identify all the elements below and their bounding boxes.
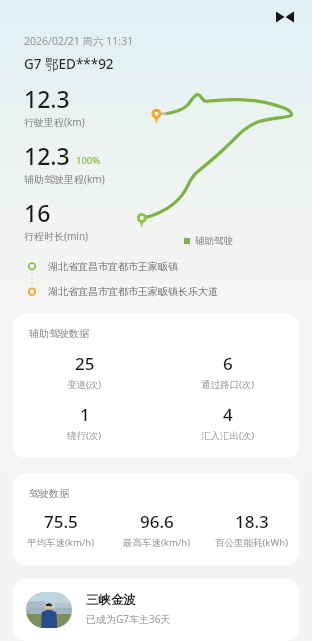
- staticText: 已成为G7车主36天: [86, 612, 171, 626]
- staticText: 平均车速(km/h): [27, 536, 95, 549]
- staticText: 4: [223, 403, 233, 426]
- staticText: 行驶里程(km): [24, 115, 85, 129]
- staticText: 辅助驾驶里程(km): [24, 172, 105, 186]
- button[interactable]: 三峡金波: [13, 579, 299, 641]
- staticText: 变道(次): [67, 378, 102, 391]
- staticText: 绕行(次): [67, 429, 102, 442]
- staticText: 100%: [76, 154, 101, 167]
- staticText: 辅助驾驶: [195, 235, 233, 247]
- staticText: 湖北省宜昌市宜都市王家畈镇长乐大道: [48, 285, 218, 298]
- button[interactable]: Share: [272, 4, 298, 30]
- staticText: G7 鄂ED***92: [24, 55, 114, 73]
- staticText: 辅助驾驶数据: [29, 327, 89, 340]
- staticText: 96.6: [140, 510, 174, 533]
- staticText: 18.3: [235, 510, 269, 533]
- staticText: 2026/02/21 周六 11:31: [24, 34, 134, 48]
- button[interactable]: 驾驶数据: [13, 473, 299, 565]
- staticText: 12.3: [24, 83, 70, 114]
- staticText: 12.3: [24, 140, 70, 171]
- staticText: 湖北省宜昌市宜都市王家畈镇: [48, 260, 178, 273]
- button[interactable]: 辅助驾驶数据: [13, 313, 299, 458]
- staticText: 75.5: [44, 510, 78, 533]
- staticText: 1: [80, 403, 90, 426]
- staticText: 16: [24, 197, 51, 228]
- staticText: 最高车速(km/h): [123, 536, 191, 549]
- staticText: 通过路口(次): [201, 378, 255, 391]
- staticText: 驾驶数据: [29, 487, 69, 500]
- staticText: 6: [223, 352, 233, 375]
- staticText: 汇入汇出(次): [201, 429, 255, 442]
- staticText: 25: [75, 352, 95, 375]
- staticText: 百公里能耗(kWh): [215, 536, 288, 549]
- staticText: 行程时长(min): [24, 229, 89, 243]
- staticText: 三峡金波: [86, 592, 136, 608]
